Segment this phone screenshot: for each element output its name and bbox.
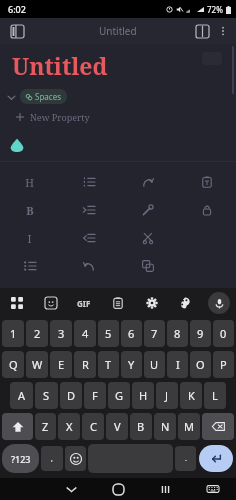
button[interactable]: 0 [213,320,234,347]
button[interactable]: Tools [118,196,177,224]
button[interactable]: ?123 [2,444,39,473]
staticText: 5 [105,326,112,341]
staticText: C [90,419,97,434]
button[interactable]: Read mode [191,20,213,42]
button[interactable]: New Property [0,110,236,124]
button[interactable]: H [132,382,154,409]
button[interactable]: N [154,413,176,440]
button[interactable]: 9 [190,320,211,347]
button[interactable]: X [58,413,80,440]
button[interactable]: Toggle sidebar [6,20,28,42]
button[interactable]: 8 [167,320,188,347]
button[interactable]: Z [35,413,56,440]
staticText: I [27,231,32,246]
staticText: U [150,357,159,372]
button[interactable]: Keyboard layouts [6,292,28,314]
button[interactable]: Copy [118,252,177,280]
button[interactable]: , [41,446,63,471]
button[interactable]: Paste as text [177,168,236,196]
button[interactable]: Collapse properties [4,90,18,104]
button[interactable]: 5 [98,320,119,347]
button[interactable]: 3 [50,320,72,347]
staticText: New Property [30,111,90,123]
button[interactable]: GIF [73,292,95,314]
button[interactable]: 6 [121,320,142,347]
staticText: R [82,357,89,372]
button[interactable]: V [106,413,128,440]
button[interactable]: P [213,351,234,378]
button[interactable]: D [60,382,82,409]
button[interactable]: 7 [144,320,165,347]
button[interactable]: Shift [2,413,33,440]
button[interactable]: Switch keyboard [189,478,236,500]
button[interactable]: E [50,351,72,378]
button[interactable]: J [156,382,178,409]
staticText: N [161,419,170,434]
staticText: B [26,203,34,218]
button[interactable]: C [82,413,104,440]
button[interactable]: Outdent [59,224,118,252]
staticText: P [220,357,227,372]
button[interactable]: Settings [141,292,163,314]
button[interactable]: Themes [174,292,196,314]
button[interactable]: 1 [2,320,24,347]
staticText: 7 [151,326,158,341]
button[interactable]: Emoji [65,446,86,471]
button[interactable]: More options [213,21,233,41]
button[interactable]: T [98,351,119,378]
staticText: W [32,357,43,372]
button[interactable]: B [130,413,152,440]
button[interactable]: Y [121,351,142,378]
button[interactable]: Bulleted list [0,252,59,280]
button[interactable]: Recent apps [142,478,189,500]
button[interactable]: W [26,351,48,378]
button[interactable]: I [167,351,188,378]
button[interactable]: 4 [74,320,96,347]
button[interactable]: Stickers [40,292,62,314]
button[interactable]: O [190,351,211,378]
staticText: 4 [82,326,89,341]
button[interactable]: Home [95,478,142,500]
button[interactable]: 2 [26,320,48,347]
button[interactable]: Spaces [20,89,67,104]
button[interactable]: U [144,351,165,378]
button[interactable]: F [84,382,106,409]
staticText: 72% [207,4,223,15]
button[interactable]: Enter [199,445,233,472]
button[interactable]: Clipboard [107,292,129,314]
staticText: Y [128,357,135,372]
staticText: O [196,357,205,372]
button[interactable]: Cut [118,224,177,252]
staticText: . [185,454,187,464]
button[interactable]: A [10,382,33,409]
button[interactable]: S [35,382,58,409]
staticText: K [188,388,195,403]
button[interactable]: Undo [59,252,118,280]
button[interactable]: L [204,382,226,409]
button[interactable]: Indent [59,196,118,224]
button[interactable]: Numbered list [59,168,118,196]
staticText: 2 [34,326,41,341]
button[interactable]: M [178,413,200,440]
button[interactable]: K [180,382,202,409]
button[interactable]: Heading [0,168,59,196]
button[interactable]: Lock [177,196,236,224]
button[interactable]: Q [2,351,24,378]
button[interactable]: Bold [0,196,59,224]
button[interactable]: Italic [0,224,59,252]
staticText: 1 [10,326,17,341]
staticText: E [58,357,65,372]
staticText: H [139,388,148,403]
button[interactable]: Redo [118,168,177,196]
button[interactable]: R [74,351,96,378]
button[interactable]: G [108,382,130,409]
staticText: X [66,419,73,434]
staticText: Z [42,419,49,434]
button[interactable]: Backspace [202,413,234,440]
button[interactable]: Voice input [208,292,230,314]
button[interactable]: Back [48,478,95,500]
button[interactable]: . [175,446,196,471]
staticText: 6:02 [8,3,26,15]
